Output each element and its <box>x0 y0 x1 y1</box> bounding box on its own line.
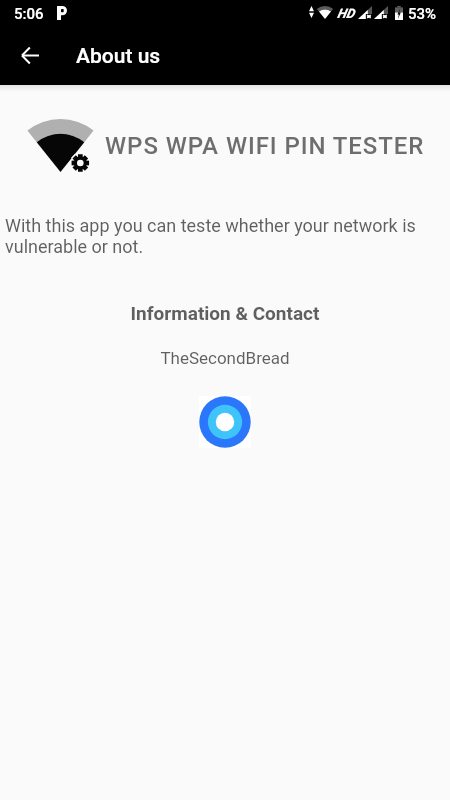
staticText: Information & Contact <box>0 302 450 324</box>
staticText: WPS WPA WIFI PIN TESTER <box>105 132 425 160</box>
staticText: 5:06 <box>14 5 44 23</box>
staticText: About us <box>76 44 161 69</box>
staticText: HD <box>337 6 355 21</box>
staticText: TheSecondBread <box>0 348 450 368</box>
button[interactable]: Telegram <box>199 396 251 448</box>
button[interactable]: Back <box>9 36 51 78</box>
staticText: With this app you can teste whether your… <box>5 215 435 257</box>
staticText: 53% <box>408 5 437 23</box>
